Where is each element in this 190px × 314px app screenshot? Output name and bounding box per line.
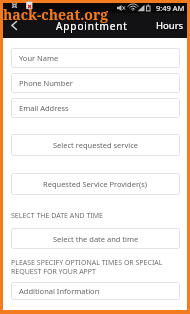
staticText: Email Address xyxy=(19,103,69,113)
staticText: Hours xyxy=(156,19,184,32)
staticText: 9:49 AM xyxy=(156,3,185,13)
button[interactable]: Your Name xyxy=(11,48,180,68)
button[interactable]: Requested Service Provider(s) xyxy=(11,173,180,195)
staticText: SELECT THE DATE AND TIME xyxy=(11,211,104,221)
button[interactable]: Email Address xyxy=(11,98,180,118)
button[interactable]: Phone Number xyxy=(11,73,180,93)
staticText: hack-cheat.org xyxy=(3,5,109,24)
staticText: Additional Information xyxy=(19,286,100,296)
staticText: Your Name xyxy=(19,53,59,63)
button[interactable]: Back xyxy=(3,13,25,38)
staticText: Appointment xyxy=(56,19,128,33)
staticText: Select the date and time xyxy=(53,234,139,244)
staticText: PLEASE SPECIFY OPTIONAL TIMES OR SPECIAL… xyxy=(11,258,163,276)
button[interactable]: Hours xyxy=(148,13,187,38)
button[interactable]: Select the date and time xyxy=(11,228,180,249)
staticText: Select requested service xyxy=(53,140,139,150)
staticText: Requested Service Provider(s) xyxy=(43,179,148,189)
staticText: Phone Number xyxy=(19,78,73,88)
button[interactable]: Additional Information xyxy=(11,282,180,300)
button[interactable]: Select requested service xyxy=(11,134,180,156)
